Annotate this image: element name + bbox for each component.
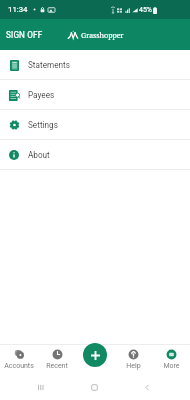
staticText: Settings	[28, 120, 58, 130]
staticText: Accounts	[4, 362, 34, 370]
staticText: Recent	[46, 362, 68, 370]
button[interactable]: Recent	[38, 344, 76, 374]
button[interactable]: Payees	[0, 80, 190, 109]
staticText: 45%	[139, 6, 152, 14]
staticText: Grasshopper	[81, 30, 124, 40]
staticText: Statements	[28, 60, 70, 70]
button[interactable]: Statements	[0, 50, 190, 79]
button[interactable]: About	[0, 140, 190, 169]
staticText: Help	[126, 362, 141, 370]
button[interactable]: Add	[83, 343, 107, 367]
button[interactable]: Recents	[33, 380, 47, 394]
staticText: Payees	[28, 90, 55, 100]
staticText: About	[28, 150, 50, 160]
staticText: SIGN OFF	[6, 30, 43, 40]
button[interactable]: Help	[114, 344, 152, 374]
button[interactable]: Settings	[0, 110, 190, 139]
button[interactable]: More	[152, 344, 190, 374]
button[interactable]: Back	[140, 380, 154, 394]
button[interactable]: Home	[87, 380, 101, 394]
button[interactable]: Accounts	[0, 344, 38, 374]
staticText: More	[163, 362, 180, 370]
staticText: 11:34	[8, 5, 28, 14]
button[interactable]: SIGN OFF	[0, 19, 49, 50]
